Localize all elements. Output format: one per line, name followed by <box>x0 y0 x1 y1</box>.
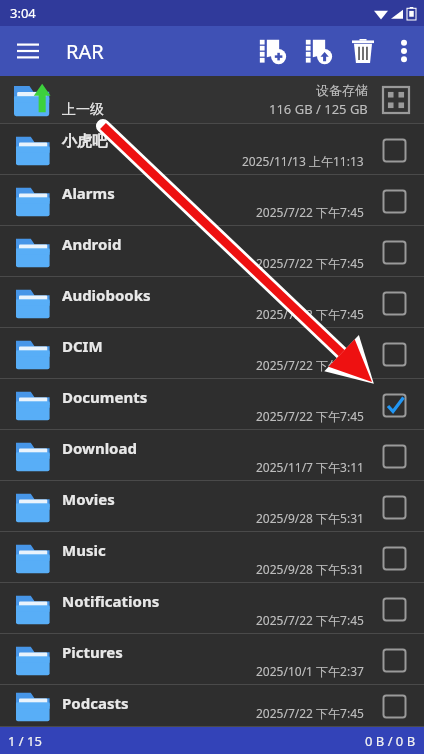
button[interactable]: DCIM <box>0 328 424 379</box>
staticText: Download <box>62 438 137 458</box>
button[interactable]: Add to archive <box>250 26 296 76</box>
staticText: DCIM <box>62 336 103 356</box>
staticText: 2025/11/7 下午3:11 <box>256 459 364 475</box>
button[interactable]: Music <box>0 532 424 583</box>
button[interactable]: Alarms <box>0 175 424 226</box>
staticText: Movies <box>62 489 115 509</box>
button[interactable]: Selected <box>374 385 414 425</box>
button[interactable]: Podcasts <box>0 685 424 727</box>
button[interactable]: Extract archive <box>296 26 342 76</box>
button[interactable]: Not selected <box>374 436 414 476</box>
button[interactable]: Android <box>0 226 424 277</box>
staticText: 2025/9/28 下午5:31 <box>256 561 364 577</box>
button[interactable]: Not selected <box>374 640 414 680</box>
button[interactable]: Movies <box>0 481 424 532</box>
staticText: Documents <box>62 387 148 407</box>
staticText: 上一级 <box>62 101 104 119</box>
button[interactable]: Pictures <box>0 634 424 685</box>
button[interactable]: Not selected <box>374 686 414 726</box>
button[interactable]: Download <box>0 430 424 481</box>
button[interactable]: More options <box>384 26 424 76</box>
button[interactable]: Delete <box>342 26 384 76</box>
button[interactable]: Grid view <box>376 80 416 120</box>
staticText: 2025/7/22 下午7:45 <box>256 705 364 721</box>
staticText: 2025/10/1 下午2:37 <box>256 663 364 679</box>
button[interactable]: Not selected <box>374 538 414 578</box>
button[interactable]: Notifications <box>0 583 424 634</box>
staticText: Audiobooks <box>62 285 151 305</box>
staticText: Notifications <box>62 591 160 611</box>
staticText: 设备存储 <box>316 82 368 98</box>
button[interactable]: Not selected <box>374 334 414 374</box>
staticText: Alarms <box>62 183 115 203</box>
button[interactable]: Not selected <box>374 283 414 323</box>
button[interactable]: Not selected <box>374 487 414 527</box>
staticText: 2025/7/22 下午7:45 <box>256 255 364 271</box>
staticText: 2025/9/28 下午5:31 <box>256 510 364 526</box>
staticText: 2025/7/22 下午7:45 <box>256 306 364 322</box>
button[interactable]: Not selected <box>374 181 414 221</box>
staticText: 小虎吧 <box>62 132 107 151</box>
button[interactable]: Documents <box>0 379 424 430</box>
staticText: 3:04 <box>10 4 36 22</box>
staticText: 1 / 15 <box>8 732 42 750</box>
staticText: 2025/11/13 上午11:13 <box>242 153 364 169</box>
staticText: 2025/7/22 下午7:45 <box>256 408 364 424</box>
staticText: Pictures <box>62 642 123 662</box>
staticText: Podcasts <box>62 693 129 713</box>
staticText: 2025/7/22 下午7:45 <box>256 357 364 373</box>
staticText: 116 GB / 125 GB <box>269 100 368 118</box>
staticText: 0 B / 0 B <box>365 732 416 750</box>
button[interactable]: Not selected <box>374 130 414 170</box>
button[interactable]: Not selected <box>374 589 414 629</box>
button[interactable]: 上一级 <box>0 76 424 124</box>
staticText: RAR <box>66 38 104 65</box>
staticText: 2025/7/22 下午7:45 <box>256 612 364 628</box>
staticText: Music <box>62 540 106 560</box>
button[interactable]: Menu <box>8 31 48 71</box>
staticText: Android <box>62 234 122 254</box>
staticText: 2025/7/22 下午7:45 <box>256 204 364 220</box>
button[interactable]: Not selected <box>374 232 414 272</box>
button[interactable]: 小虎吧 <box>0 124 424 175</box>
button[interactable]: Audiobooks <box>0 277 424 328</box>
